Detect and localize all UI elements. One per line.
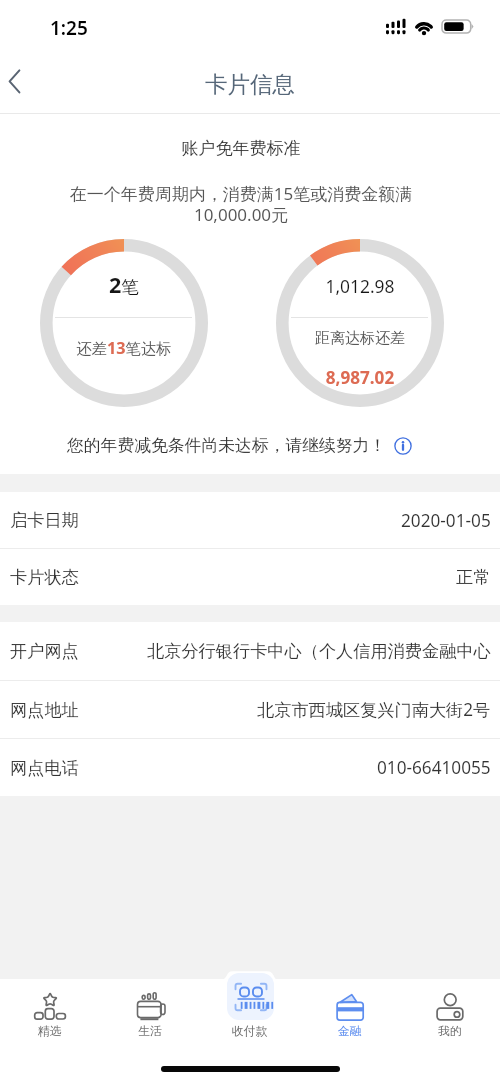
staticText: 我的 [438,1024,462,1039]
button[interactable]: Info [393,436,412,455]
staticText: 账户免年费标准 [0,138,491,159]
staticText: 北京市西城区复兴门南大街2号 [257,698,491,721]
staticText: 2笔 [40,270,208,299]
staticText: 精选 [38,1024,62,1039]
staticText: 卡片信息 [205,70,295,98]
staticText: 网点地址 [10,699,79,721]
staticText: 金融 [338,1024,362,1039]
staticText: 1,012.98 [276,274,444,298]
staticText: 2020-01-05 [401,509,491,532]
staticText: 距离达标还差 [276,329,444,348]
button[interactable]: 卡片状态 [0,549,500,605]
staticText: 1:25 [50,15,88,41]
button[interactable]: 网点地址 [0,681,500,738]
button[interactable]: 启卡日期 [0,492,500,548]
button[interactable]: 金融 [300,979,400,1041]
button[interactable]: 收付款 [200,979,300,1041]
staticText: 010-66410055 [377,756,491,779]
button[interactable]: 精选 [0,979,100,1041]
staticText: 开户网点 [10,640,79,662]
button[interactable]: 生活 [100,979,200,1041]
staticText: 收付款 [232,1024,268,1039]
button[interactable]: 我的 [400,979,500,1041]
button[interactable]: 开户网点 [0,622,500,680]
staticText: 网点电话 [10,757,79,779]
button[interactable]: Back [0,56,46,114]
staticText: 生活 [138,1024,162,1039]
staticText: 卡片状态 [10,566,79,588]
button[interactable]: 网点电话 [0,739,500,796]
staticText: 启卡日期 [10,509,79,531]
button[interactable] [227,973,274,1020]
staticText: 您的年费减免条件尚未达标，请继续努力！ [67,435,387,456]
staticText: 在一个年费周期内，消费满15笔或消费金额满 10,000.00元 [0,182,491,226]
staticText: 8,987.02 [276,366,444,389]
staticText: 还差13笔达标 [40,337,208,359]
staticText: 正常 [456,566,491,588]
staticText: 北京分行银行卡中心（个人信用消费金融中心 [147,640,491,662]
